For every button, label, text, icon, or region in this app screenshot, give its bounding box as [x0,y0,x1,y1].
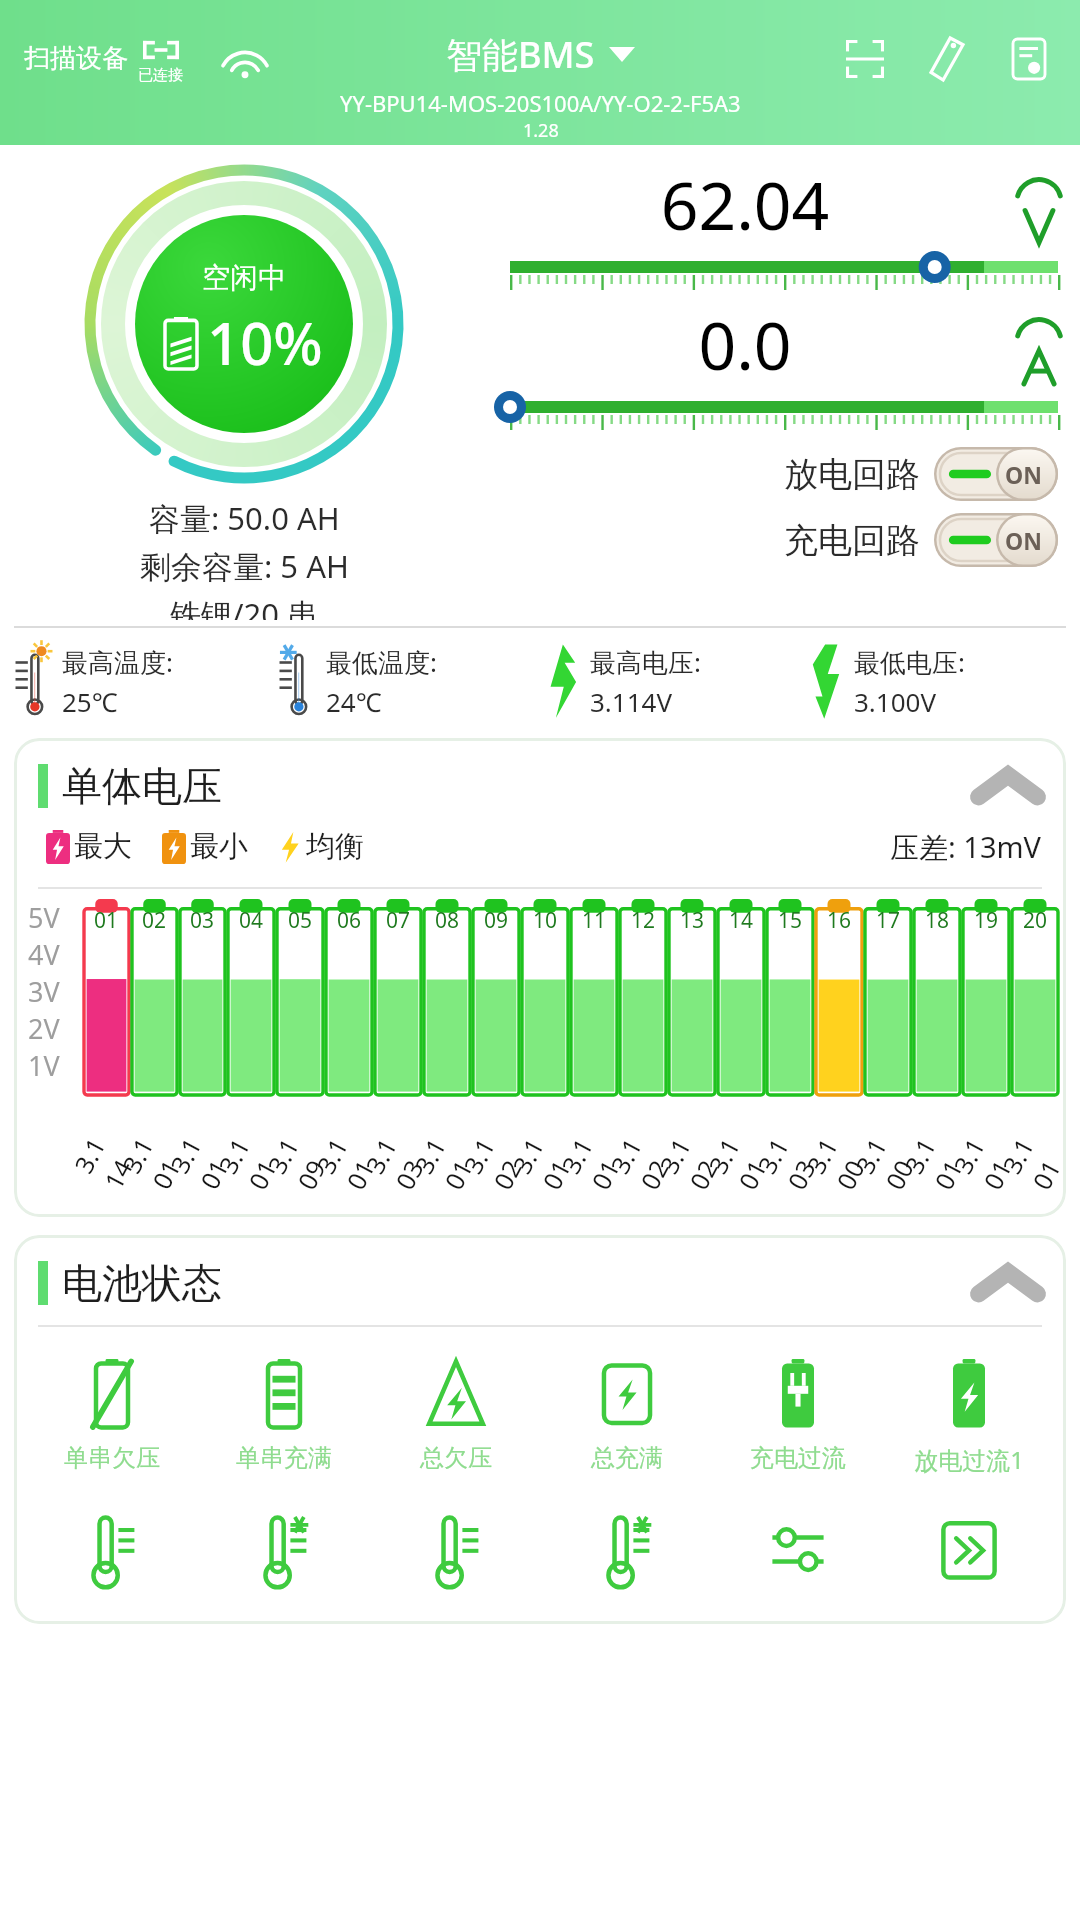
button[interactable]: ON [934,447,1058,501]
button[interactable]: 最高电压: [540,642,804,722]
button[interactable]: 充电回路 [488,513,1058,567]
staticText: 总欠压 [420,1443,492,1473]
button[interactable]: 最大 [36,822,144,871]
staticText: 1.28 [523,118,559,143]
staticText: 铁锂/20 串 [170,593,319,620]
staticText: 18 [925,906,950,935]
staticText: 最大 [74,828,132,865]
staticText: 3.101 [162,1123,243,1195]
staticText: 扫描设备 [24,42,128,75]
button[interactable]: 放电过流1 [887,1343,1050,1488]
button[interactable]: Settings [1006,36,1052,82]
staticText: 13 [680,906,705,935]
staticText: 单串充满 [236,1443,332,1473]
staticText: 最小 [190,828,248,865]
staticText: 3.101 [896,1123,978,1195]
button[interactable]: Bluetooth signal [222,40,268,86]
staticText: 3.100 [798,1123,880,1195]
staticText: 2V [28,1010,60,1047]
staticText: 3.101 [210,1123,292,1195]
staticText: 19 [974,906,999,935]
staticText: 已连接 [138,66,183,85]
button[interactable]: 总欠压 [374,1343,537,1485]
button[interactable]: Edit name [924,36,970,82]
staticText: 放电回路 [784,453,920,496]
staticText: 充电回路 [784,519,920,562]
button[interactable]: Collapse [970,758,1046,814]
button[interactable] [374,1500,537,1604]
staticText: 3.102 [651,1123,733,1195]
staticText: 11 [582,906,607,935]
staticText: 放电过流1 [914,1443,1024,1476]
button[interactable]: 放电回路 [488,447,1058,501]
staticText: 3.114V [590,684,673,719]
staticText: 充电过流 [750,1443,846,1473]
staticText: 03 [190,906,215,935]
staticText: 09 [484,906,509,935]
staticText: 25℃ [62,684,118,719]
button[interactable] [887,1500,1050,1604]
staticText: 12 [631,906,656,935]
staticText: 3.101 [700,1123,782,1195]
staticText: 3V [28,973,60,1010]
button[interactable]: Collapse [970,1255,1046,1311]
button[interactable]: 单串欠压 [30,1343,194,1485]
button[interactable] [30,1500,194,1604]
button[interactable]: 智能BMS [446,30,635,79]
staticText: 10 [533,906,558,935]
staticText: ON [1005,459,1042,490]
staticText: 空闲中 [202,260,286,295]
staticText: YY-BPU14-MOS-20S100A/YY-O2-2-F5A3 [340,88,741,118]
staticText: 容量: 50.0 AH [149,497,340,539]
staticText: 3.101 [114,1123,195,1195]
button[interactable]: 最低电压: [804,642,1068,722]
button[interactable]: 扫描设备 [24,38,183,85]
staticText: 最低温度: [326,644,437,680]
staticText: 电池状态 [62,1258,222,1308]
staticText: 单串欠压 [64,1443,160,1473]
staticText: 14 [729,906,754,935]
staticText: 5V [28,899,60,936]
button[interactable]: 最高温度: [12,642,276,722]
staticText: 1V [28,1047,60,1084]
staticText: 3.102 [455,1123,537,1195]
staticText: 3.101 [308,1123,390,1195]
staticText: 62.04 [488,159,1002,249]
button[interactable]: 最小 [152,822,260,871]
staticText: 3.101 [994,1123,1066,1195]
staticText: 最高电压: [590,644,701,680]
button[interactable]: 均衡 [268,822,376,871]
staticText: 4V [28,936,60,973]
staticText: 20 [1023,906,1048,935]
staticText: 最低电压: [854,644,965,680]
staticText: 15 [778,906,803,935]
staticText: 08 [435,906,460,935]
staticText: 07 [386,906,411,935]
button[interactable]: ON [934,513,1058,567]
button[interactable]: 单串充满 [202,1343,366,1485]
staticText: 3.100V [854,684,937,719]
staticText: 剩余容量: 5 AH [140,545,349,587]
staticText: ON [1005,525,1042,556]
staticText: 压差: 13mV [890,827,1042,867]
staticText: 单体电压 [62,761,222,811]
staticText: 04 [239,906,264,935]
staticText: 3.109 [259,1123,341,1195]
button[interactable] [716,1500,879,1604]
button[interactable]: 充电过流 [716,1343,879,1485]
button[interactable] [545,1500,708,1604]
staticText: 3.101 [504,1123,586,1195]
staticText: 10% [207,303,323,382]
staticText: 3.102 [602,1123,684,1195]
staticText: 0.0 [488,299,1002,389]
staticText: 02 [142,906,167,935]
button[interactable] [202,1500,366,1604]
staticText: 17 [876,906,901,935]
staticText: 总充满 [591,1443,663,1473]
button[interactable]: 最低温度: [276,642,540,722]
button[interactable]: 总充满 [545,1343,708,1485]
button[interactable]: Scan [842,36,888,82]
staticText: 05 [288,906,313,935]
staticText: 智能BMS [446,30,595,79]
